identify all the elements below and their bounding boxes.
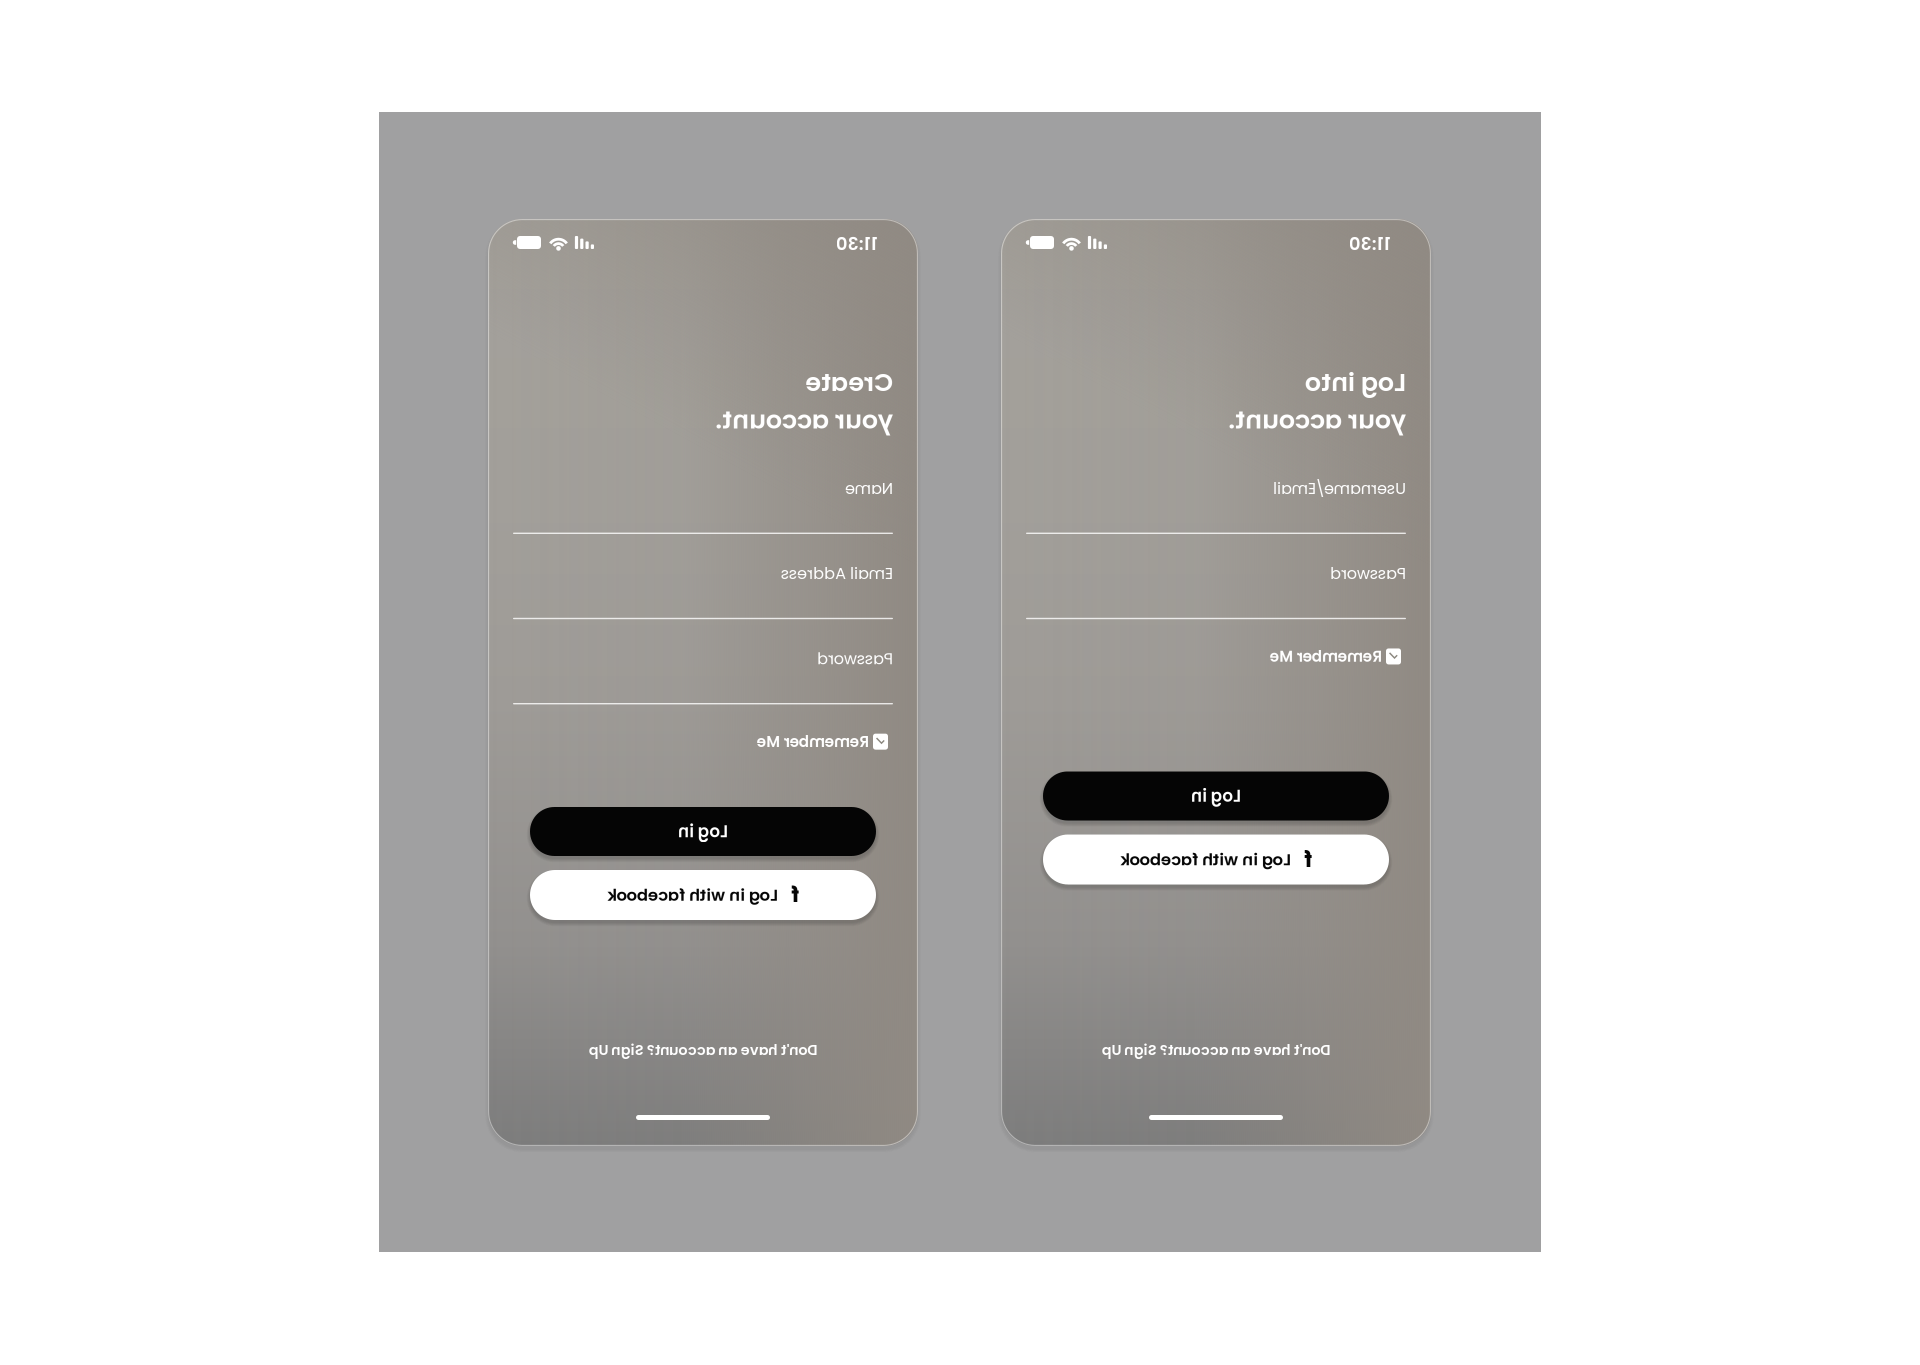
- button[interactable]: Don't have an account? Sign Up: [489, 1041, 919, 1059]
- button[interactable]: Log in: [531, 771, 877, 820]
- staticText: f: [1121, 880, 1129, 910]
- button[interactable]: Log in: [1044, 807, 1390, 856]
- button[interactable]: Don't have an account? Sign Up: [1002, 1041, 1432, 1059]
- staticText: Don't have an account? Sign Up: [589, 1040, 818, 1060]
- staticText: 11:30: [529, 231, 571, 256]
- staticText: Log in: [1192, 820, 1242, 843]
- button[interactable]: f: [1044, 870, 1390, 920]
- staticText: Log in: [679, 784, 729, 808]
- staticText: Log in with facebook: [1142, 883, 1313, 906]
- staticText: 11:30: [1042, 231, 1084, 256]
- staticText: f: [608, 845, 616, 874]
- staticText: Don't have an account? Sign Up: [1102, 1040, 1331, 1060]
- staticText: Log in with facebook: [629, 848, 800, 871]
- button[interactable]: f: [531, 834, 877, 884]
